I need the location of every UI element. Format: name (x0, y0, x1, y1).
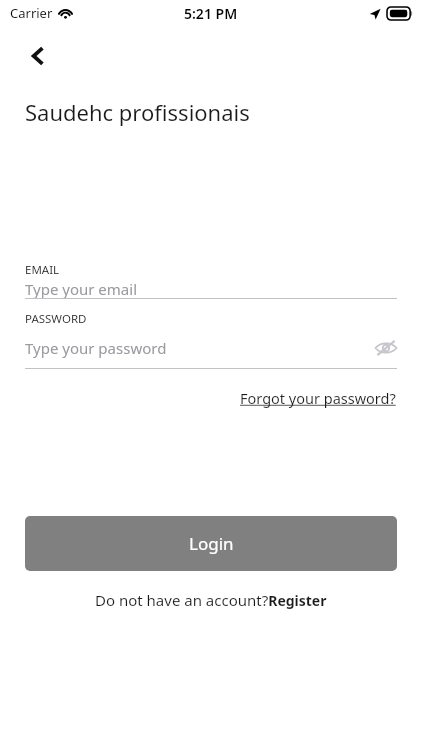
button[interactable]: Do not have an account?Register (95, 590, 327, 610)
staticText: Login (189, 532, 234, 555)
staticText: 5:21 PM (184, 4, 238, 23)
staticText: EMAIL (25, 262, 60, 278)
button[interactable]: Forgot your password? (240, 386, 396, 410)
button[interactable]: Login (25, 516, 397, 571)
staticText: PASSWORD (25, 311, 87, 327)
staticText: Carrier (10, 4, 53, 22)
button[interactable]: Type your password (25, 336, 355, 360)
staticText: Type your email (25, 279, 138, 299)
staticText: Do not have an account?Register (95, 590, 327, 610)
button[interactable]: Type your email (25, 278, 397, 300)
button[interactable]: Show password (368, 330, 404, 366)
staticText: Forgot your password? (240, 388, 396, 408)
staticText: Saudehc profissionais (25, 97, 250, 127)
button[interactable]: Back (20, 38, 56, 74)
staticText: Type your password (25, 338, 167, 358)
